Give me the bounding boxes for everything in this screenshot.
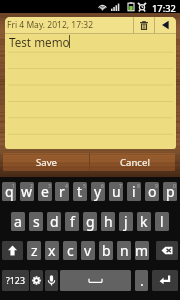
button[interactable]: u (109, 182, 123, 201)
staticText: s (33, 212, 40, 231)
staticText: 7 (119, 183, 122, 190)
button[interactable]: e (38, 182, 52, 201)
button[interactable]: . (135, 270, 148, 291)
button[interactable]: j (119, 212, 133, 231)
staticText: v (84, 241, 92, 260)
staticText: Fri 4 May. 2012, 17:32 (7, 19, 94, 31)
staticText: k (140, 212, 148, 231)
button[interactable]: f (65, 212, 79, 231)
staticText: Test memo (9, 34, 70, 50)
staticText: 5 (83, 183, 86, 190)
staticText: w (21, 182, 33, 201)
button[interactable]: ?123 (2, 270, 29, 291)
button[interactable]: r (55, 182, 69, 201)
button[interactable]: o (145, 182, 159, 201)
button[interactable]: m (135, 241, 149, 260)
staticText: 4 (65, 183, 68, 190)
button[interactable]: h (101, 212, 115, 231)
button[interactable]: a (11, 212, 25, 231)
button[interactable]: w (20, 182, 34, 201)
staticText: z (31, 241, 38, 260)
button[interactable]: k (137, 212, 151, 231)
button[interactable]: c (63, 241, 77, 260)
button[interactable]: y (91, 182, 105, 201)
button[interactable]: Save (3, 153, 89, 171)
button[interactable]: Settings (30, 270, 43, 291)
staticText: f (70, 212, 75, 231)
button[interactable]: q (2, 182, 16, 201)
button[interactable]: x (45, 241, 59, 260)
button[interactable]: p (163, 182, 177, 201)
staticText: l (160, 212, 164, 231)
staticText: a (14, 212, 22, 231)
button[interactable]: i (127, 182, 141, 201)
button[interactable]: n (117, 241, 131, 260)
button[interactable]: g (83, 212, 97, 231)
staticText: 9 (155, 183, 158, 190)
staticText: i (132, 182, 136, 201)
staticText: 8 (137, 183, 140, 190)
staticText: 1 (12, 183, 15, 190)
staticText: m (135, 241, 149, 260)
staticText: q (5, 182, 14, 201)
staticText: t (77, 182, 83, 201)
staticText: h (104, 212, 113, 231)
button[interactable]: Backspace (156, 241, 178, 260)
button[interactable]: s (29, 212, 43, 231)
button[interactable]: Voice input (45, 270, 58, 291)
staticText: p (166, 182, 175, 201)
staticText: y (94, 182, 102, 201)
staticText: o (148, 182, 157, 201)
staticText: n (120, 241, 129, 260)
staticText: x (48, 241, 56, 260)
staticText: 2 (30, 183, 33, 190)
button[interactable]: z (27, 241, 41, 260)
staticText: . (140, 271, 144, 290)
staticText: r (59, 182, 65, 201)
button[interactable]: Enter (152, 270, 178, 291)
button[interactable]: d (47, 212, 61, 231)
button[interactable]: l (155, 212, 169, 231)
staticText: g (86, 212, 95, 231)
staticText: 3 (48, 183, 51, 190)
button[interactable]: v (81, 241, 95, 260)
staticText: j (124, 212, 128, 231)
staticText: Cancel (120, 156, 150, 169)
staticText: 17:32 (152, 2, 176, 15)
staticText: c (67, 241, 74, 260)
staticText: d (50, 212, 59, 231)
staticText: 6 (101, 183, 104, 190)
button[interactable]: Shift (2, 241, 23, 260)
staticText: Save (36, 156, 57, 169)
staticText: b (102, 241, 111, 260)
button[interactable]: Space (60, 270, 131, 291)
button[interactable]: Delete memo (134, 17, 154, 33)
staticText: e (41, 182, 49, 201)
staticText: 0 (173, 183, 176, 190)
button[interactable]: Cancel (90, 153, 175, 171)
staticText: ?123 (6, 275, 25, 287)
staticText: u (112, 182, 121, 201)
button[interactable]: t (73, 182, 87, 201)
button[interactable]: Back (154, 17, 176, 33)
button[interactable]: b (99, 241, 113, 260)
